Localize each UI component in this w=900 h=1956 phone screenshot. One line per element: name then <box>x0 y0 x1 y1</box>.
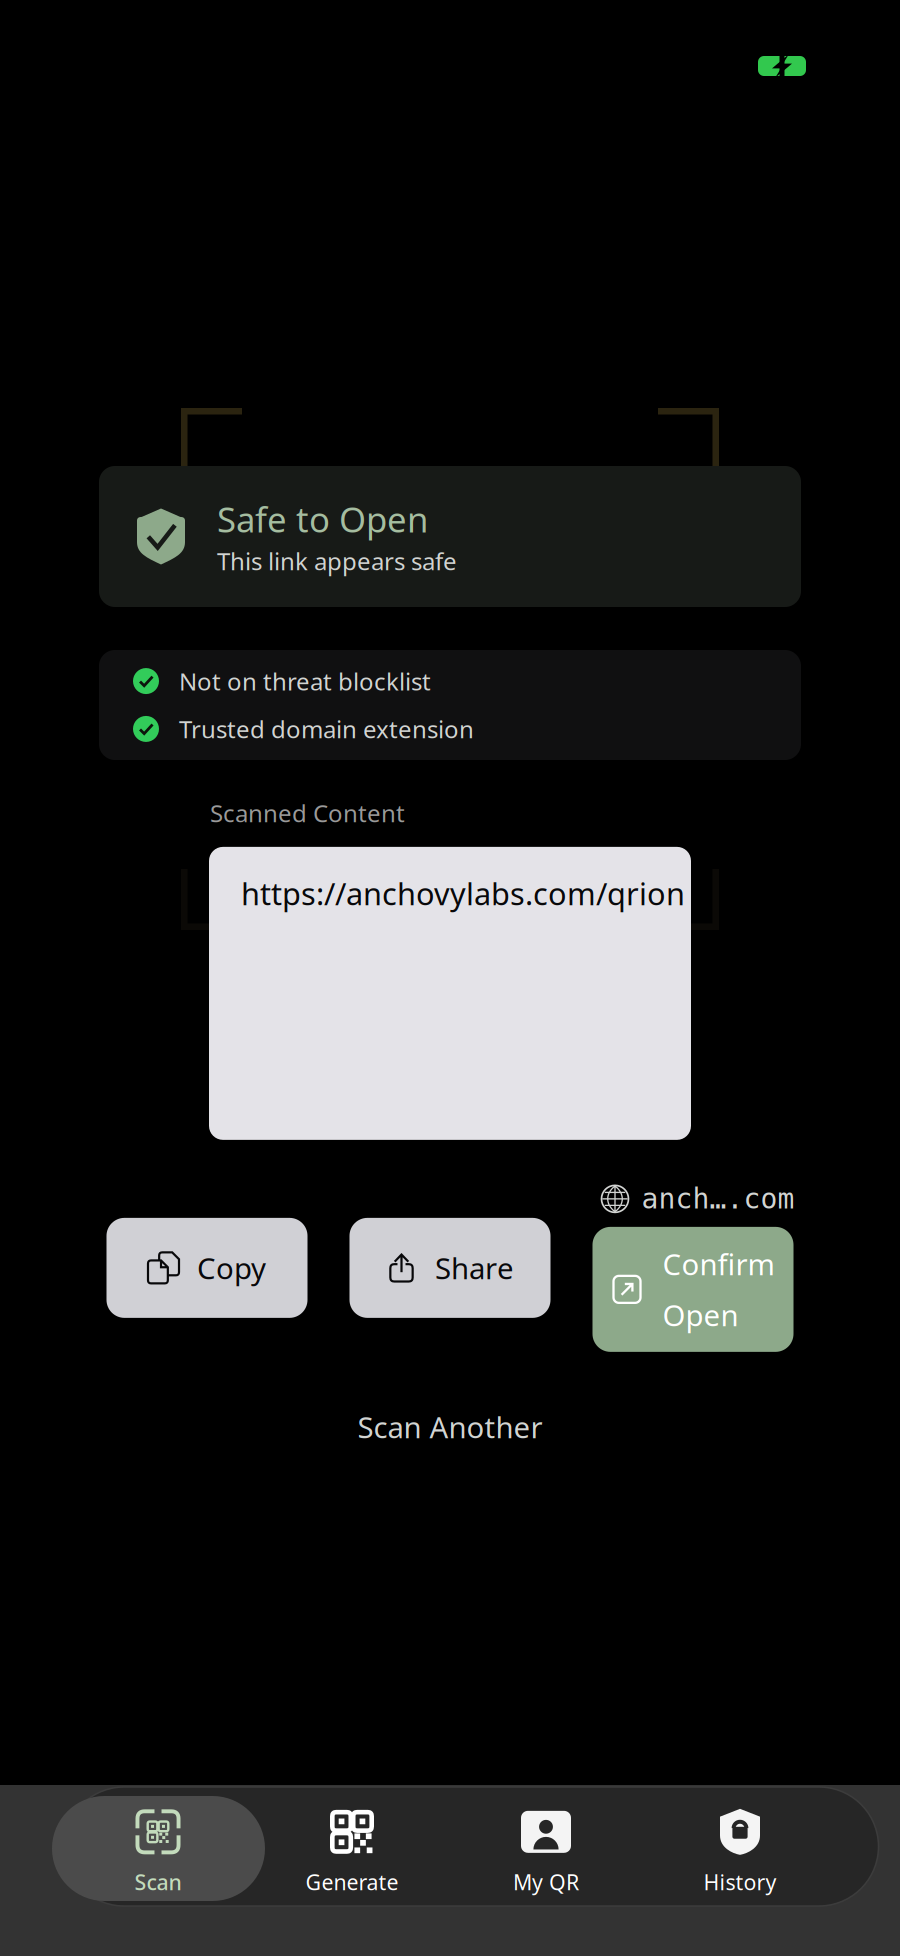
button[interactable]: Scan <box>61 1796 255 1901</box>
button[interactable]: Share <box>349 1218 550 1318</box>
button[interactable]: Generate <box>255 1796 449 1901</box>
button[interactable]: Scan Another <box>290 1407 610 1447</box>
staticText: Not on threat blocklist <box>179 665 431 697</box>
button[interactable]: History <box>643 1796 837 1901</box>
button[interactable]: My QR <box>449 1796 643 1901</box>
staticText: https://anchovylabs.com/qrion <box>241 873 685 914</box>
staticText: My QR <box>513 1868 579 1896</box>
staticText: This link appears safe <box>217 545 457 577</box>
staticText: History <box>703 1868 776 1896</box>
button[interactable]: Copy <box>106 1218 307 1318</box>
staticText: anch….com <box>641 1183 794 1215</box>
staticText: Safe to Open <box>217 496 428 542</box>
staticText: Generate <box>305 1868 398 1896</box>
button[interactable]: Confirm <box>592 1227 793 1352</box>
staticText: Scan Another <box>357 1407 542 1446</box>
staticText: Confirm <box>662 1244 774 1283</box>
staticText: Scan <box>134 1868 181 1896</box>
staticText: Share <box>435 1248 514 1287</box>
staticText: Open <box>662 1295 738 1334</box>
staticText: Trusted domain extension <box>179 713 474 745</box>
staticText: Scanned Content <box>210 797 405 829</box>
staticText: Copy <box>197 1248 266 1287</box>
